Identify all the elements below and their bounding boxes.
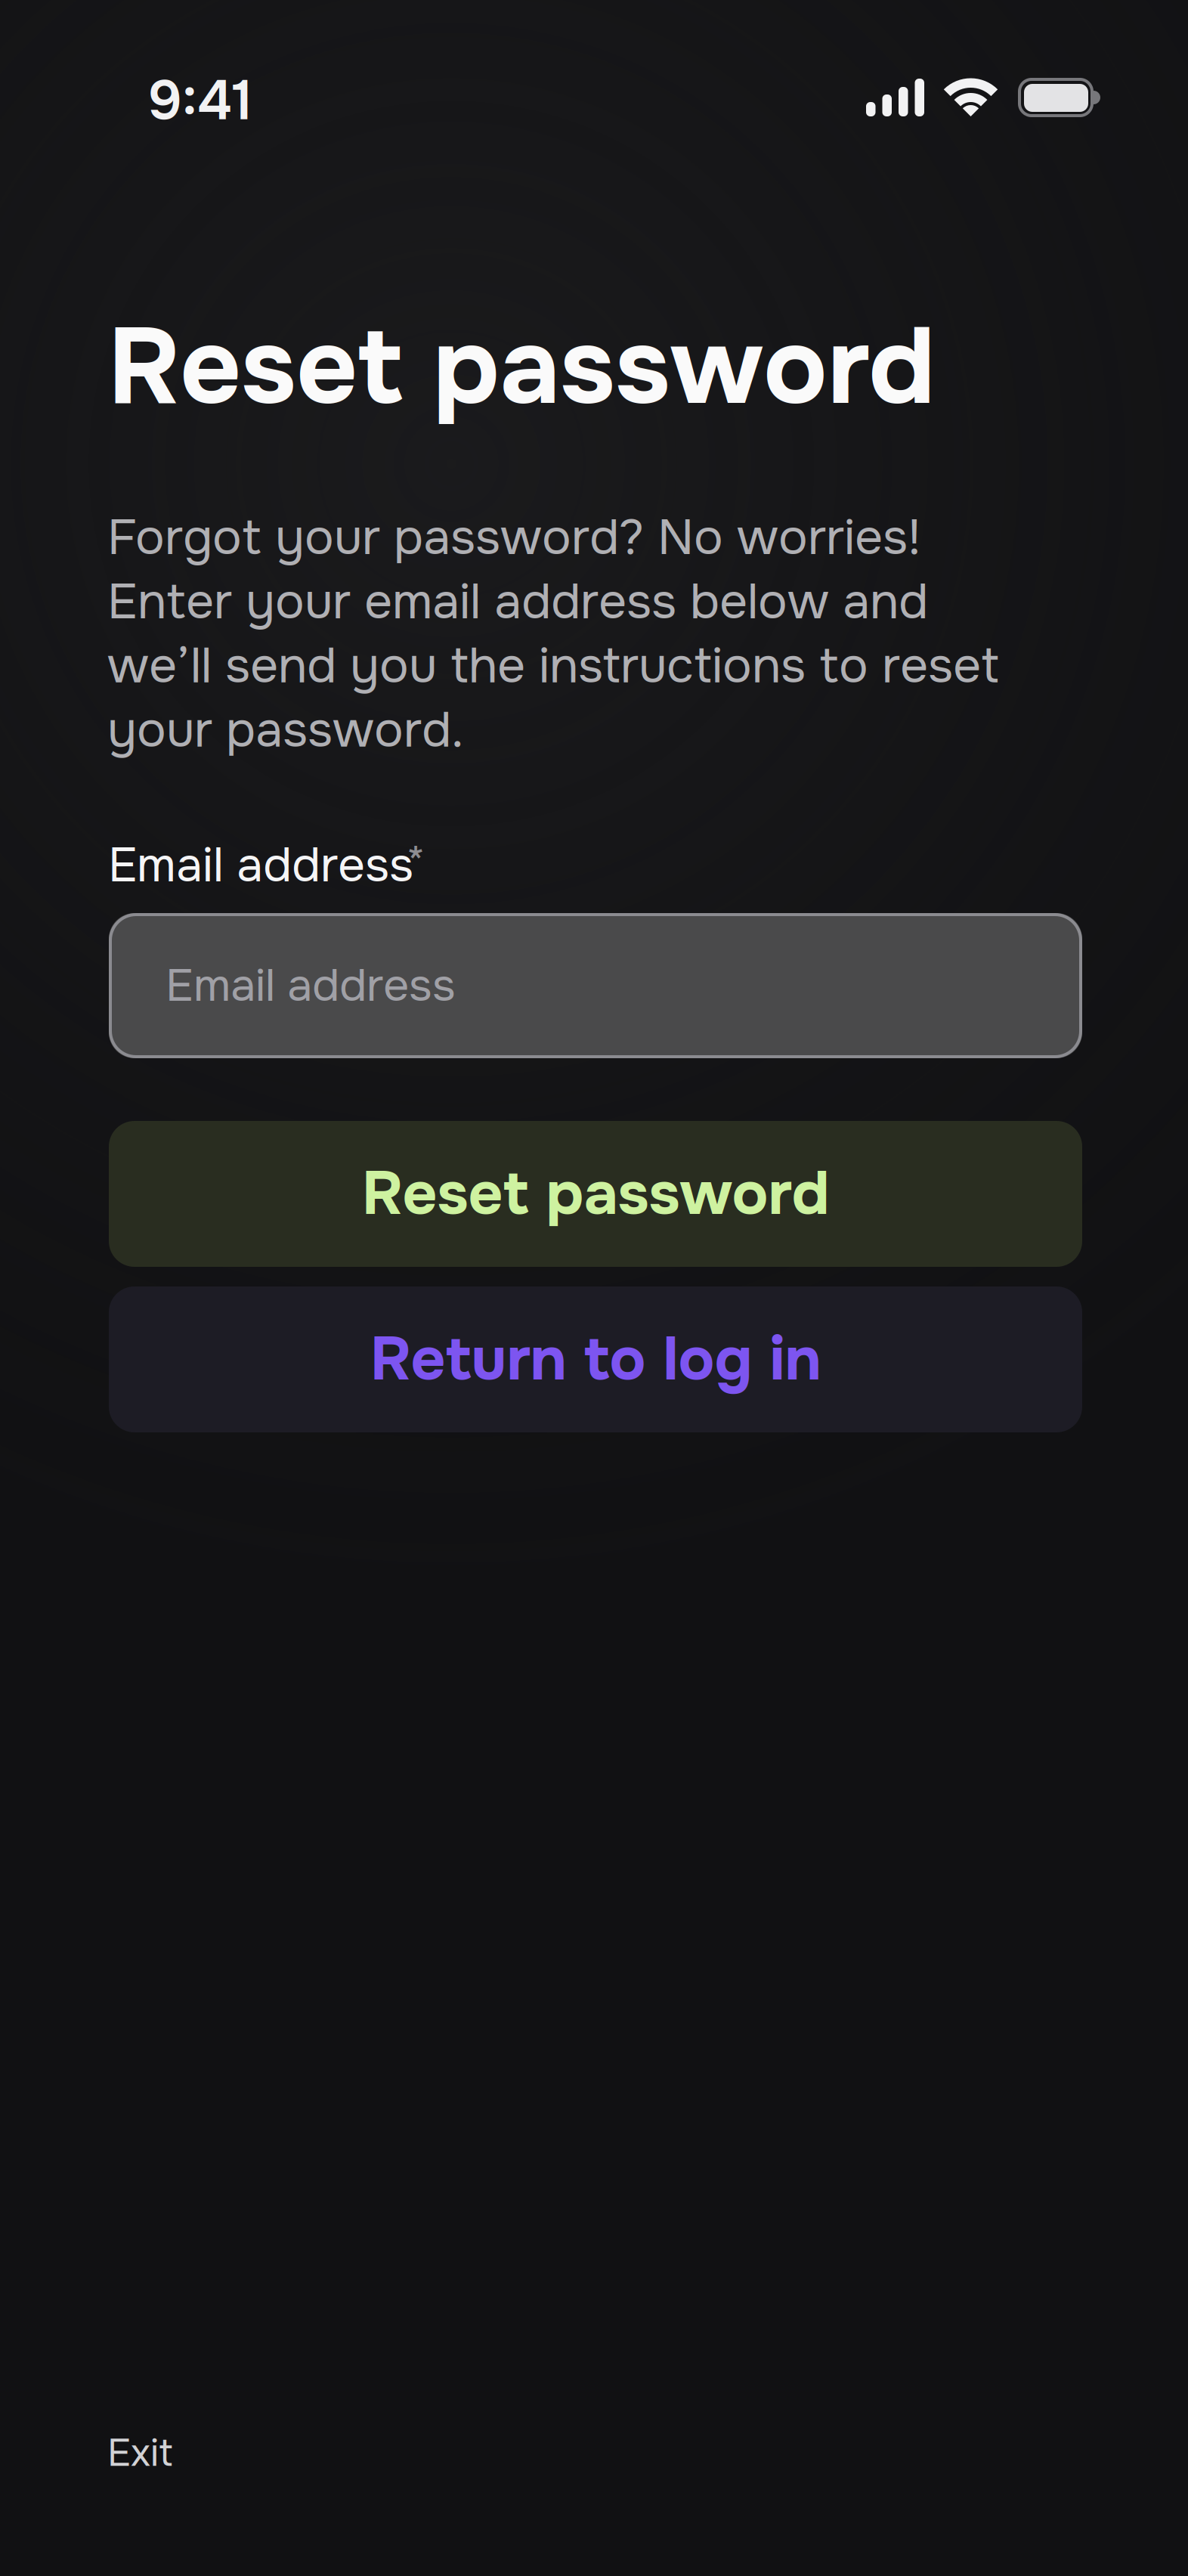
staticText: Email address	[166, 957, 456, 1015]
button[interactable]: Reset password	[109, 1121, 1082, 1267]
staticText: *	[406, 835, 425, 896]
staticText: 9:41	[148, 67, 252, 136]
staticText: Return to log in	[370, 1321, 821, 1398]
staticText: Forgot your password? No worries! Enter …	[107, 506, 999, 762]
button[interactable]: Return to log in	[109, 1286, 1082, 1432]
button[interactable]: Exit	[107, 2429, 173, 2477]
staticText: Email address	[108, 835, 413, 896]
staticText: Reset password	[107, 299, 935, 436]
staticText: Reset password	[362, 1155, 829, 1232]
staticText: Exit	[107, 2429, 173, 2477]
